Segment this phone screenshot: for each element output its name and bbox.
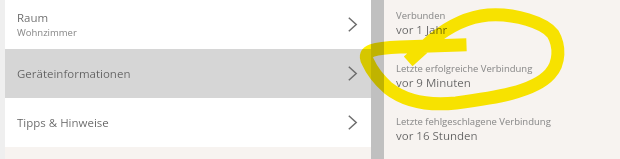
staticText: vor 1 Jahr [396,22,448,38]
staticText: Geräteinformationen [17,66,348,82]
button[interactable]: Raum [5,0,371,49]
button[interactable]: Geräteinformationen [5,49,371,98]
staticText: Wohnzimmer [17,26,77,39]
button[interactable]: Tipps & Hinweise [5,98,371,147]
staticText: Letzte erfolgreiche Verbindung [396,62,533,75]
staticText: Letzte fehlgeschlagene Verbindung [396,115,551,128]
staticText: Raum [17,10,49,26]
staticText: vor 9 Minuten [396,75,471,91]
staticText: Verbunden [396,9,446,22]
staticText: Tipps & Hinweise [17,115,348,131]
staticText: vor 16 Stunden [396,128,478,144]
